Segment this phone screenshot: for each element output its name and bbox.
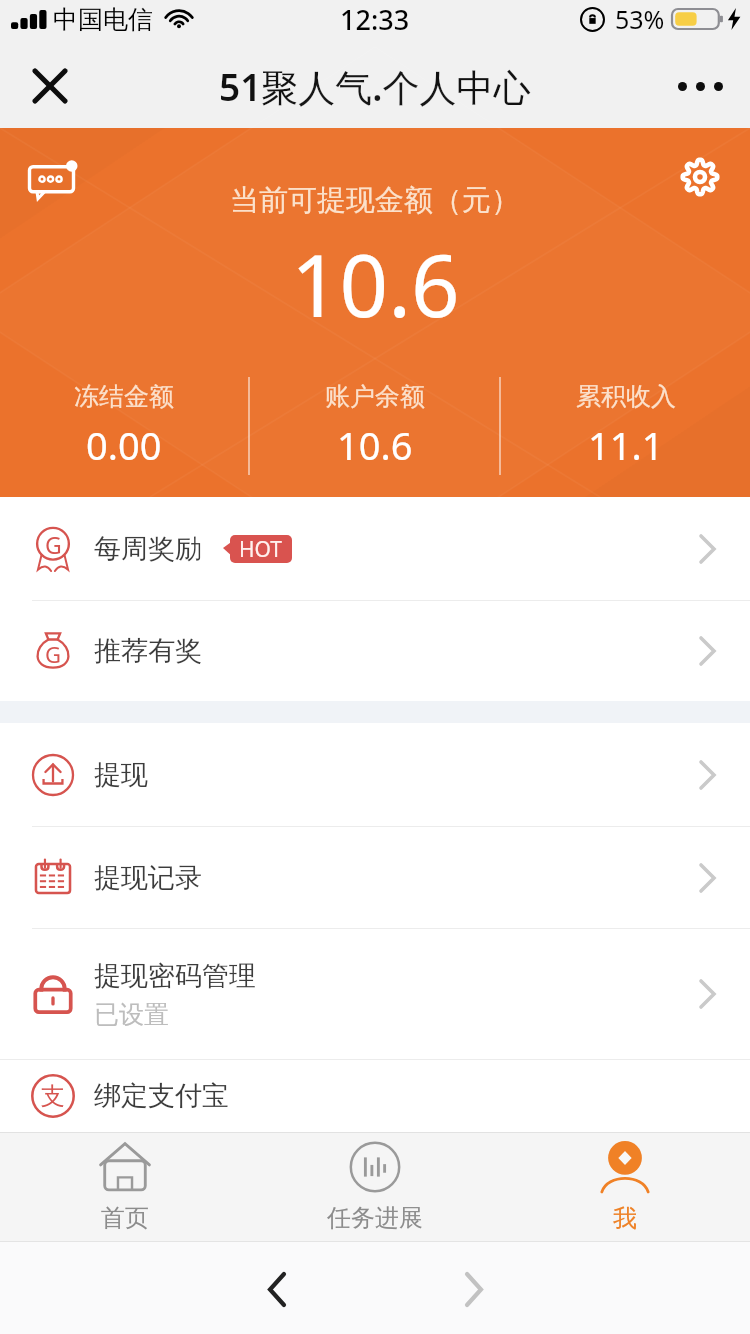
staticText: 53% (615, 2, 665, 36)
staticText: 任务进展 (327, 1203, 423, 1233)
button[interactable]: 提现记录 (0, 827, 750, 928)
staticText: 51聚人气.个人中心 (219, 61, 531, 112)
button[interactable]: Back (249, 1261, 305, 1317)
staticText: G (45, 529, 62, 560)
button[interactable]: 支 (0, 1060, 750, 1132)
staticText: 10.6 (337, 419, 413, 471)
staticText: 11.1 (588, 419, 664, 471)
button[interactable]: G (0, 601, 750, 701)
staticText: 支 (41, 1081, 65, 1111)
button[interactable]: 任务进展 (250, 1133, 500, 1241)
button[interactable]: 首页 (0, 1133, 250, 1241)
staticText: 冻结金额 (74, 381, 174, 412)
staticText: 每周奖励 (94, 532, 202, 566)
staticText: 我 (613, 1203, 637, 1233)
staticText: 提现 (94, 758, 148, 792)
button[interactable]: More options (670, 56, 730, 116)
button[interactable]: Close (20, 56, 80, 116)
staticText: 10.6 (291, 226, 460, 342)
staticText: 已设置 (94, 999, 169, 1030)
staticText: 中国电信 (53, 4, 153, 35)
staticText: 当前可提现金额（元） (230, 182, 520, 219)
staticText: 提现密码管理 (94, 959, 256, 993)
staticText: HOT (239, 535, 283, 563)
button[interactable]: Messages (17, 142, 89, 214)
staticText: 累积收入 (576, 381, 676, 412)
button[interactable]: G (0, 497, 750, 600)
staticText: 12:33 (340, 1, 410, 38)
button[interactable]: Settings (664, 141, 736, 213)
staticText: 首页 (101, 1203, 149, 1233)
staticText: 提现记录 (94, 861, 202, 895)
staticText: 绑定支付宝 (94, 1079, 229, 1113)
button[interactable]: Forward (446, 1261, 502, 1317)
staticText: 账户余额 (325, 381, 425, 412)
button[interactable]: 我 (500, 1133, 750, 1241)
staticText: G (45, 639, 62, 669)
staticText: 推荐有奖 (94, 634, 202, 668)
button[interactable]: 提现 (0, 723, 750, 826)
staticText: 0.00 (86, 419, 162, 471)
button[interactable]: 提现密码管理 (0, 929, 750, 1059)
